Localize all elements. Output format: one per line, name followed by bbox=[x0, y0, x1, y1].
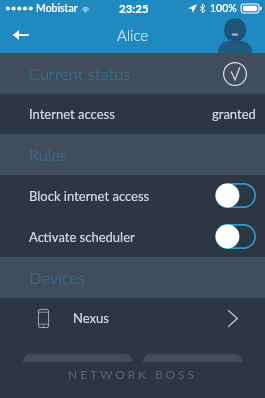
button[interactable]: Internet access bbox=[0, 94, 265, 134]
staticText: Alice bbox=[117, 26, 149, 44]
button[interactable]: Nexus bbox=[0, 298, 265, 338]
staticText: NETWORK BOSS bbox=[68, 367, 197, 381]
button[interactable]: Devices tab bbox=[23, 354, 132, 362]
staticText: granted bbox=[212, 106, 256, 122]
staticText: Devices bbox=[29, 268, 86, 288]
button[interactable]: Settings tab bbox=[143, 354, 242, 362]
staticText: 100% bbox=[210, 2, 237, 15]
button[interactable]: Status OK bbox=[222, 61, 248, 87]
staticText: Nexus bbox=[73, 310, 109, 326]
staticText: Rules bbox=[29, 145, 67, 165]
staticText: Activate scheduler bbox=[29, 229, 135, 245]
staticText: Internet access bbox=[29, 106, 115, 122]
staticText: Current status bbox=[29, 64, 131, 84]
button[interactable]: Block internet access bbox=[0, 175, 265, 216]
staticText: 23:25 bbox=[119, 2, 149, 16]
staticText: Block internet access bbox=[29, 188, 150, 204]
staticText: Mobistar bbox=[36, 2, 78, 15]
button[interactable]: Activate scheduler bbox=[0, 216, 265, 257]
button[interactable]: Back bbox=[6, 21, 34, 49]
